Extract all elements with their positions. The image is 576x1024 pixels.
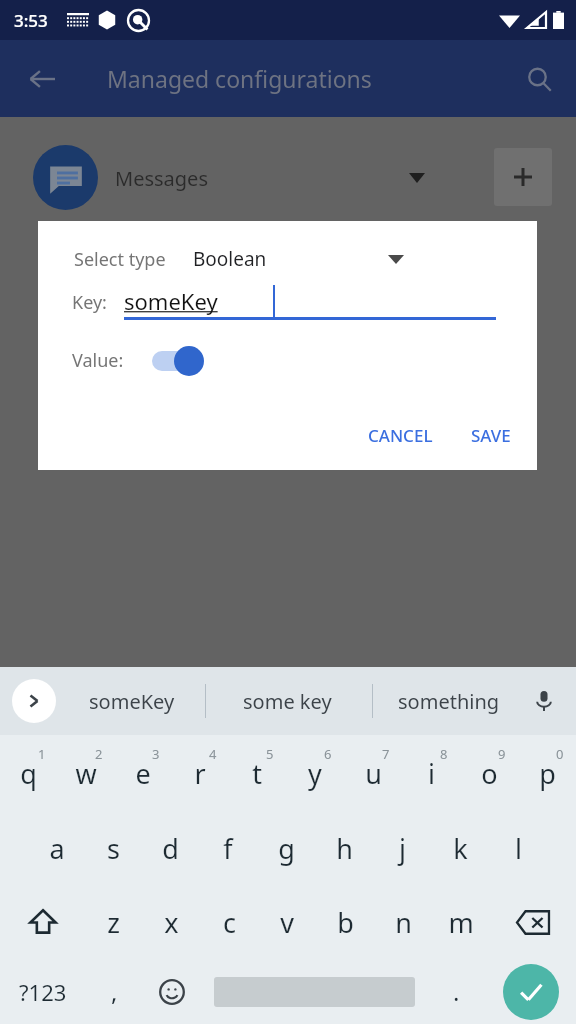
staticText: 2 xyxy=(95,745,103,763)
staticText: n xyxy=(395,904,412,941)
staticText: 0 xyxy=(556,745,564,763)
button[interactable]: Messages xyxy=(115,157,425,199)
staticText: ?123 xyxy=(19,977,67,1007)
button[interactable]: Voice input xyxy=(522,679,566,723)
staticText: Select type xyxy=(74,247,166,272)
staticText: k xyxy=(453,830,468,867)
button[interactable]: o xyxy=(460,735,518,811)
button[interactable] xyxy=(148,339,222,383)
button[interactable]: j xyxy=(373,811,431,885)
staticText: 4 xyxy=(209,745,217,763)
staticText: h xyxy=(336,830,353,867)
button[interactable]: z xyxy=(85,885,142,959)
button[interactable]: Select type xyxy=(74,237,404,281)
staticText: . xyxy=(453,975,460,1008)
button[interactable]: m xyxy=(432,885,490,959)
staticText: SAVE xyxy=(471,424,511,447)
button[interactable]: h xyxy=(315,811,373,885)
button[interactable]: k xyxy=(431,811,489,885)
button[interactable]: Done xyxy=(485,959,576,1024)
button[interactable]: s xyxy=(85,811,142,885)
staticText: l xyxy=(515,830,522,867)
staticText: Boolean xyxy=(193,246,267,272)
staticText: b xyxy=(337,904,354,941)
staticText: 9 xyxy=(498,745,506,763)
button[interactable]: b xyxy=(316,885,374,959)
button[interactable]: , xyxy=(86,959,143,1024)
staticText: s xyxy=(107,830,120,867)
button[interactable]: . xyxy=(428,959,485,1024)
staticText: 5 xyxy=(266,745,274,763)
staticText: 6 xyxy=(324,745,332,763)
staticText: some key xyxy=(243,688,332,715)
button[interactable]: e xyxy=(114,735,171,811)
button[interactable]: r xyxy=(171,735,228,811)
staticText: d xyxy=(162,830,179,867)
button[interactable] xyxy=(200,959,428,1024)
staticText: y xyxy=(308,755,322,792)
button[interactable]: t xyxy=(228,735,286,811)
button[interactable]: SAVE xyxy=(459,415,523,456)
staticText: g xyxy=(278,830,295,867)
button[interactable]: x xyxy=(142,885,200,959)
staticText: w xyxy=(75,755,97,792)
staticText: r xyxy=(194,755,206,792)
button[interactable]: some key xyxy=(212,667,362,735)
staticText: q xyxy=(20,755,37,792)
staticText: t xyxy=(252,755,262,792)
button[interactable]: g xyxy=(257,811,315,885)
staticText: Managed configurations xyxy=(107,63,372,94)
button[interactable]: d xyxy=(142,811,199,885)
button[interactable]: More suggestions xyxy=(12,679,56,723)
button[interactable]: someKey xyxy=(66,667,198,735)
staticText: 1 xyxy=(38,745,46,763)
staticText: 7 xyxy=(382,745,390,763)
staticText: u xyxy=(365,755,382,792)
staticText: p xyxy=(539,755,556,792)
staticText: f xyxy=(223,830,233,867)
button[interactable]: v xyxy=(258,885,316,959)
button[interactable]: l xyxy=(489,811,547,885)
button[interactable]: q xyxy=(0,735,57,811)
button[interactable]: Search xyxy=(516,56,562,102)
staticText: v xyxy=(280,904,294,941)
staticText: Value: xyxy=(72,348,124,373)
staticText: something xyxy=(398,688,500,715)
button[interactable]: ?123 xyxy=(0,959,86,1024)
button[interactable]: a xyxy=(28,811,85,885)
staticText: x xyxy=(164,904,179,941)
staticText: 8 xyxy=(440,745,448,763)
staticText: CANCEL xyxy=(368,424,433,447)
staticText: 3 xyxy=(152,745,160,763)
staticText: j xyxy=(399,830,406,867)
button[interactable]: c xyxy=(200,885,258,959)
staticText: o xyxy=(481,755,498,792)
staticText: , xyxy=(111,975,118,1008)
button[interactable]: Back xyxy=(18,55,66,103)
staticText: e xyxy=(135,755,151,792)
staticText: Key: xyxy=(72,290,107,315)
button[interactable]: y xyxy=(286,735,344,811)
button[interactable]: i xyxy=(402,735,460,811)
button[interactable]: Emoji xyxy=(143,959,200,1024)
staticText: z xyxy=(107,904,120,941)
button[interactable]: something xyxy=(379,667,519,735)
staticText: 3:53 xyxy=(14,9,48,32)
staticText: Messages xyxy=(115,165,208,192)
staticText: i xyxy=(428,755,435,792)
button[interactable]: someKey xyxy=(124,281,496,321)
button[interactable]: n xyxy=(374,885,432,959)
button[interactable]: w xyxy=(57,735,114,811)
button[interactable]: CANCEL xyxy=(356,415,445,456)
staticText: a xyxy=(49,830,65,867)
staticText: c xyxy=(223,904,236,941)
staticText: someKey xyxy=(124,286,218,316)
button[interactable]: u xyxy=(344,735,402,811)
button[interactable]: Backspace xyxy=(490,885,576,959)
staticText: someKey xyxy=(89,688,175,715)
button[interactable]: p xyxy=(518,735,576,811)
button[interactable]: Shift xyxy=(0,885,85,959)
button[interactable]: f xyxy=(199,811,257,885)
staticText: m xyxy=(448,904,474,941)
button[interactable]: Add xyxy=(494,148,552,206)
